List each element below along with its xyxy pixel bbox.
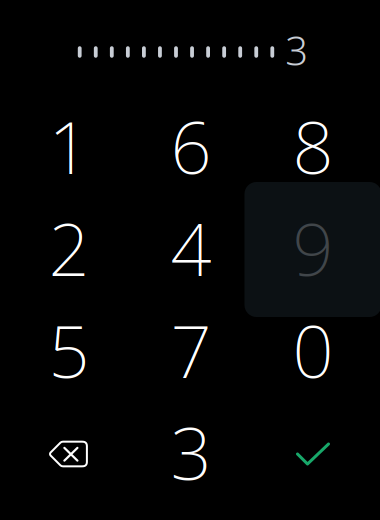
button[interactable]: 9 (252, 197, 374, 299)
button[interactable]: 6 (130, 95, 252, 197)
button[interactable]: 8 (252, 95, 374, 197)
staticText: 7 (170, 302, 211, 398)
staticText: 9 (292, 200, 333, 296)
staticText: 3 (170, 404, 211, 500)
staticText: 3 (285, 23, 308, 76)
staticText: 6 (170, 98, 211, 194)
button[interactable]: 2 (8, 197, 130, 299)
button[interactable]: 4 (130, 197, 252, 299)
staticText: 8 (292, 98, 333, 194)
button[interactable]: 7 (130, 299, 252, 401)
staticText: 5 (48, 302, 89, 398)
button[interactable]: Confirm (252, 401, 374, 503)
staticText: 1 (48, 98, 89, 194)
button[interactable]: 0 (252, 299, 374, 401)
button[interactable]: 1 (8, 95, 130, 197)
staticText: 2 (48, 200, 89, 296)
button[interactable]: Delete (8, 401, 130, 503)
staticText: 4 (170, 200, 211, 296)
staticText: 0 (292, 302, 333, 398)
button[interactable]: 5 (8, 299, 130, 401)
button[interactable]: 3 (130, 401, 252, 503)
